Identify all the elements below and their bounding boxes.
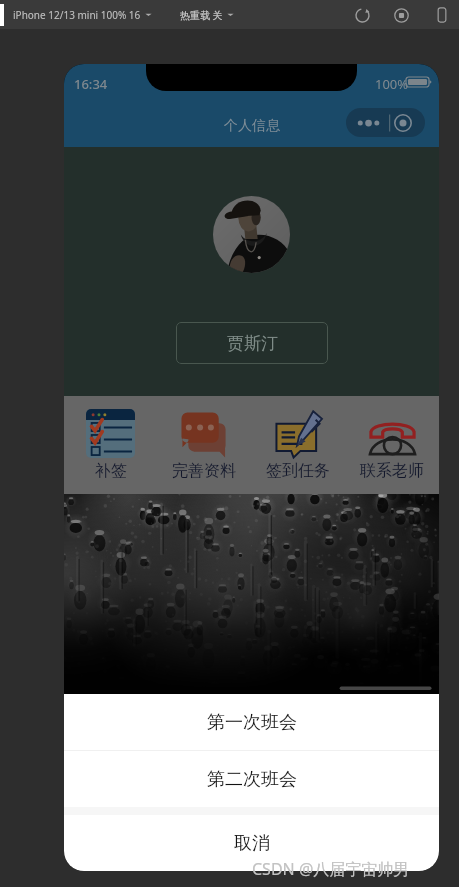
button[interactable]: Mini program menu bbox=[346, 108, 425, 137]
staticText: 16:34 bbox=[74, 75, 108, 93]
button[interactable]: Device bbox=[429, 2, 455, 28]
staticText: CSDN @八届宇宙帅男 bbox=[252, 858, 410, 880]
staticText: 联系老师 bbox=[360, 461, 424, 481]
staticText: 100% bbox=[375, 75, 409, 93]
button[interactable]: 贾斯汀 bbox=[176, 322, 328, 364]
button[interactable]: 补签 bbox=[64, 396, 157, 494]
staticText: 补签 bbox=[95, 461, 127, 481]
staticText: iPhone 12/13 mini 100% 16 bbox=[13, 8, 141, 22]
button[interactable]: 签到任务 bbox=[251, 396, 345, 494]
button[interactable]: 第二次班会 bbox=[64, 751, 439, 807]
staticText: 个人信息 bbox=[224, 117, 280, 135]
staticText: 第一次班会 bbox=[207, 711, 297, 734]
staticText: 取消 bbox=[234, 832, 270, 855]
button[interactable]: Stop bbox=[388, 2, 414, 28]
staticText: 第二次班会 bbox=[207, 768, 297, 791]
staticText: 贾斯汀 bbox=[227, 333, 278, 354]
staticText: 热重载 关 bbox=[180, 8, 223, 22]
button[interactable]: Reload bbox=[349, 2, 375, 28]
button[interactable]: 取消 bbox=[64, 815, 439, 871]
staticText: 签到任务 bbox=[266, 461, 330, 481]
button[interactable]: 联系老师 bbox=[345, 396, 439, 494]
button[interactable]: Profile photo bbox=[213, 196, 290, 273]
button[interactable]: 第一次班会 bbox=[64, 694, 439, 750]
staticText: 完善资料 bbox=[172, 461, 236, 481]
button[interactable]: 完善资料 bbox=[157, 396, 251, 494]
